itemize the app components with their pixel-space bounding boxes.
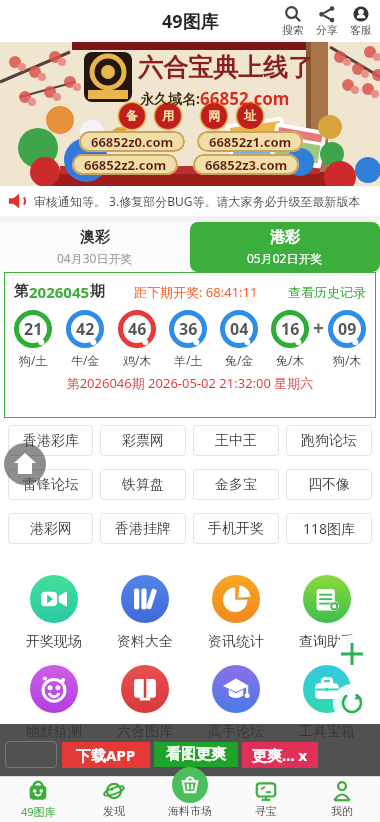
button[interactable]: 四不像 (286, 469, 372, 500)
staticText: 高手论坛 (208, 723, 264, 741)
button[interactable]: 工具宝箱 (281, 665, 372, 741)
staticText: 香港彩库 (23, 432, 79, 450)
staticText: 分享 (316, 23, 338, 37)
staticText: 工具宝箱 (299, 723, 355, 741)
button[interactable] (333, 684, 371, 722)
button[interactable]: 发现 (76, 776, 152, 822)
staticText: 第 (14, 282, 29, 301)
button[interactable]: 查看历史记录 (288, 284, 366, 300)
staticText: 49图库 (162, 9, 219, 34)
staticText: 兔/金 (225, 352, 254, 368)
button[interactable]: 下载APP (62, 742, 150, 768)
button[interactable]: 资料大全 (99, 575, 190, 651)
staticText: 永久域名: (140, 89, 200, 108)
staticText: 更爽... x (252, 745, 308, 765)
button[interactable] (333, 635, 371, 673)
staticText: 04月30日开奖 (57, 250, 133, 266)
button[interactable]: 寻宝 (228, 776, 304, 822)
staticText: 澳彩 (80, 228, 110, 247)
button[interactable]: 我的 (304, 776, 380, 822)
button[interactable]: 手机开奖 (193, 513, 279, 544)
staticText: + (313, 315, 324, 341)
staticText: 118图库 (303, 519, 356, 538)
staticText: 港彩 (270, 228, 300, 247)
staticText: 手机开奖 (208, 520, 264, 538)
button[interactable]: 资讯统计 (190, 575, 281, 651)
staticText: 我的 (331, 804, 353, 818)
button[interactable]: 66852z0.com (79, 131, 185, 152)
staticText: 资料大全 (117, 633, 173, 651)
staticText: 09 (338, 318, 357, 340)
button[interactable]: 开奖现场 (8, 575, 99, 651)
button[interactable]: 六合图库 (99, 665, 190, 741)
button[interactable]: 66852z1.com (197, 131, 303, 152)
button[interactable]: 雷锋论坛 (8, 469, 93, 500)
staticText: 海料市场 (168, 804, 212, 818)
button[interactable]: 彩票网 (100, 425, 186, 456)
button[interactable]: 香港挂牌 (100, 513, 186, 544)
button[interactable]: 铁算盘 (100, 469, 186, 500)
staticText: 46 (128, 318, 147, 340)
staticText: 铁算盘 (122, 476, 164, 494)
staticText: 期 (90, 282, 105, 301)
button[interactable]: 66852z3.com (193, 154, 299, 175)
staticText: 资讯统计 (208, 633, 264, 651)
button[interactable]: 66852z2.com (72, 154, 178, 175)
staticText: 六合图库 (117, 723, 173, 741)
staticText: 搜索 (282, 23, 304, 37)
button[interactable]: 更爽... x (242, 742, 318, 768)
button[interactable] (5, 741, 57, 768)
staticText: 客服 (350, 23, 372, 37)
staticText: 66852z2.com (84, 156, 167, 174)
button[interactable] (172, 767, 208, 803)
staticText: 开奖现场 (26, 633, 82, 651)
staticText: 审核通知等。 3.修复部分BUG等。请大家务必升级至最新版本 (34, 193, 361, 209)
staticText: 距下期开奖: 68:41:11 (134, 283, 258, 301)
staticText: 金多宝 (215, 476, 257, 494)
staticText: 66852z1.com (209, 133, 292, 151)
staticText: 49图库 (21, 804, 56, 819)
staticText: 幽默猜测 (26, 723, 82, 741)
button[interactable]: 澳彩 (0, 222, 190, 272)
staticText: 36 (179, 318, 198, 340)
staticText: 雷锋论坛 (23, 476, 79, 494)
button[interactable]: 港彩 (190, 222, 380, 272)
button[interactable] (4, 443, 46, 485)
staticText: 牛/金 (71, 352, 100, 368)
staticText: 16 (281, 318, 300, 340)
staticText: 42 (76, 318, 95, 340)
button[interactable]: 幽默猜测 (8, 665, 99, 741)
button[interactable]: 118图库 (286, 513, 372, 544)
button[interactable]: 香港彩库 (8, 425, 93, 456)
staticText: 鸡/木 (123, 352, 152, 368)
staticText: 2026045 (29, 282, 90, 302)
staticText: 66852.com (200, 87, 290, 110)
staticText: 六合宝典上线了 (138, 52, 313, 83)
staticText: 跑狗论坛 (301, 432, 357, 450)
staticText: 址 (244, 108, 256, 123)
button[interactable]: 49图库 (0, 776, 76, 822)
staticText: 66852z0.com (91, 133, 174, 151)
button[interactable]: 高手论坛 (190, 665, 281, 741)
staticText: 港彩网 (30, 520, 72, 538)
button[interactable]: 六合宝典上线了 (0, 42, 380, 186)
button[interactable]: 分享 (316, 5, 338, 37)
button[interactable]: 王中王 (193, 425, 279, 456)
button[interactable]: 港彩网 (8, 513, 93, 544)
button[interactable]: 看图更爽 (154, 742, 238, 767)
staticText: 用 (162, 108, 174, 123)
button[interactable]: 跑狗论坛 (286, 425, 372, 456)
button[interactable]: 海料市场 (152, 776, 228, 822)
staticText: 兔/木 (276, 352, 305, 368)
button[interactable]: 金多宝 (193, 469, 279, 500)
staticText: 羊/土 (174, 352, 203, 368)
staticText: 寻宝 (255, 804, 277, 818)
staticText: 狗/土 (19, 352, 48, 368)
button[interactable]: 搜索 (282, 5, 304, 37)
staticText: 王中王 (215, 432, 257, 450)
button[interactable]: 查询助手 (281, 575, 372, 651)
staticText: 备 (126, 108, 138, 123)
staticText: 四不像 (308, 476, 350, 494)
button[interactable]: 客服 (350, 5, 372, 37)
staticText: 21 (24, 318, 43, 340)
